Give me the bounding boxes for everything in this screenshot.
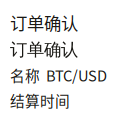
staticText: 结算时间 <box>10 90 70 111</box>
staticText: 订单确认 <box>10 39 78 60</box>
staticText: 订单确认 <box>10 10 78 35</box>
staticText: 名称 BTC/USD <box>10 64 107 86</box>
